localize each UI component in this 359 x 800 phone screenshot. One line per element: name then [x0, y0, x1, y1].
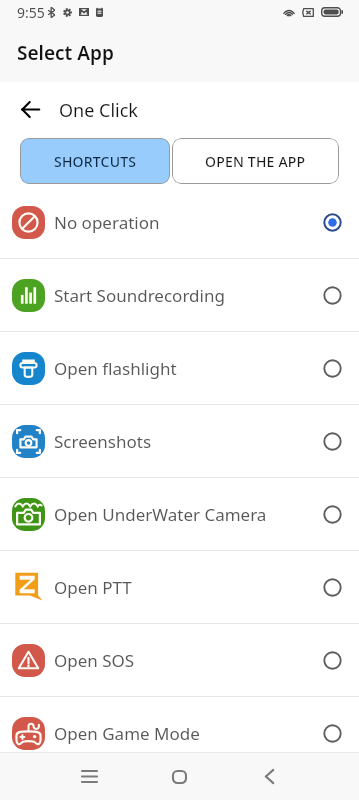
staticText: Screenshots	[54, 430, 152, 453]
button[interactable]: Open flashlight	[0, 332, 359, 404]
button[interactable]: Home	[119, 753, 239, 800]
staticText: Open Game Mode	[54, 722, 200, 745]
button[interactable]: Open UnderWater Camera	[0, 478, 359, 550]
button[interactable]: Open PTT	[0, 551, 359, 623]
button[interactable]: No operation	[0, 186, 359, 258]
staticText: Start Soundrecording	[54, 284, 225, 307]
button[interactable]: SHORTCUTS	[20, 138, 170, 184]
staticText: 9:55	[17, 3, 45, 22]
button[interactable]: Open Game Mode	[0, 697, 359, 769]
staticText: Open PTT	[54, 576, 132, 599]
button[interactable]: Back	[239, 753, 359, 800]
staticText: One Click	[59, 98, 138, 123]
button[interactable]: Recent apps	[0, 753, 119, 800]
button[interactable]: Start Soundrecording	[0, 259, 359, 331]
button[interactable]: Open SOS	[0, 624, 359, 696]
button[interactable]: Back	[7, 86, 53, 132]
button[interactable]: Screenshots	[0, 405, 359, 477]
staticText: Open flashlight	[54, 357, 177, 380]
staticText: Open SOS	[54, 649, 135, 672]
staticText: OPEN THE APP	[205, 152, 306, 171]
staticText: No operation	[54, 211, 160, 234]
staticText: Select App	[17, 40, 114, 66]
staticText: Open UnderWater Camera	[54, 503, 267, 526]
staticText: SHORTCUTS	[54, 152, 137, 171]
button[interactable]: OPEN THE APP	[172, 138, 339, 184]
